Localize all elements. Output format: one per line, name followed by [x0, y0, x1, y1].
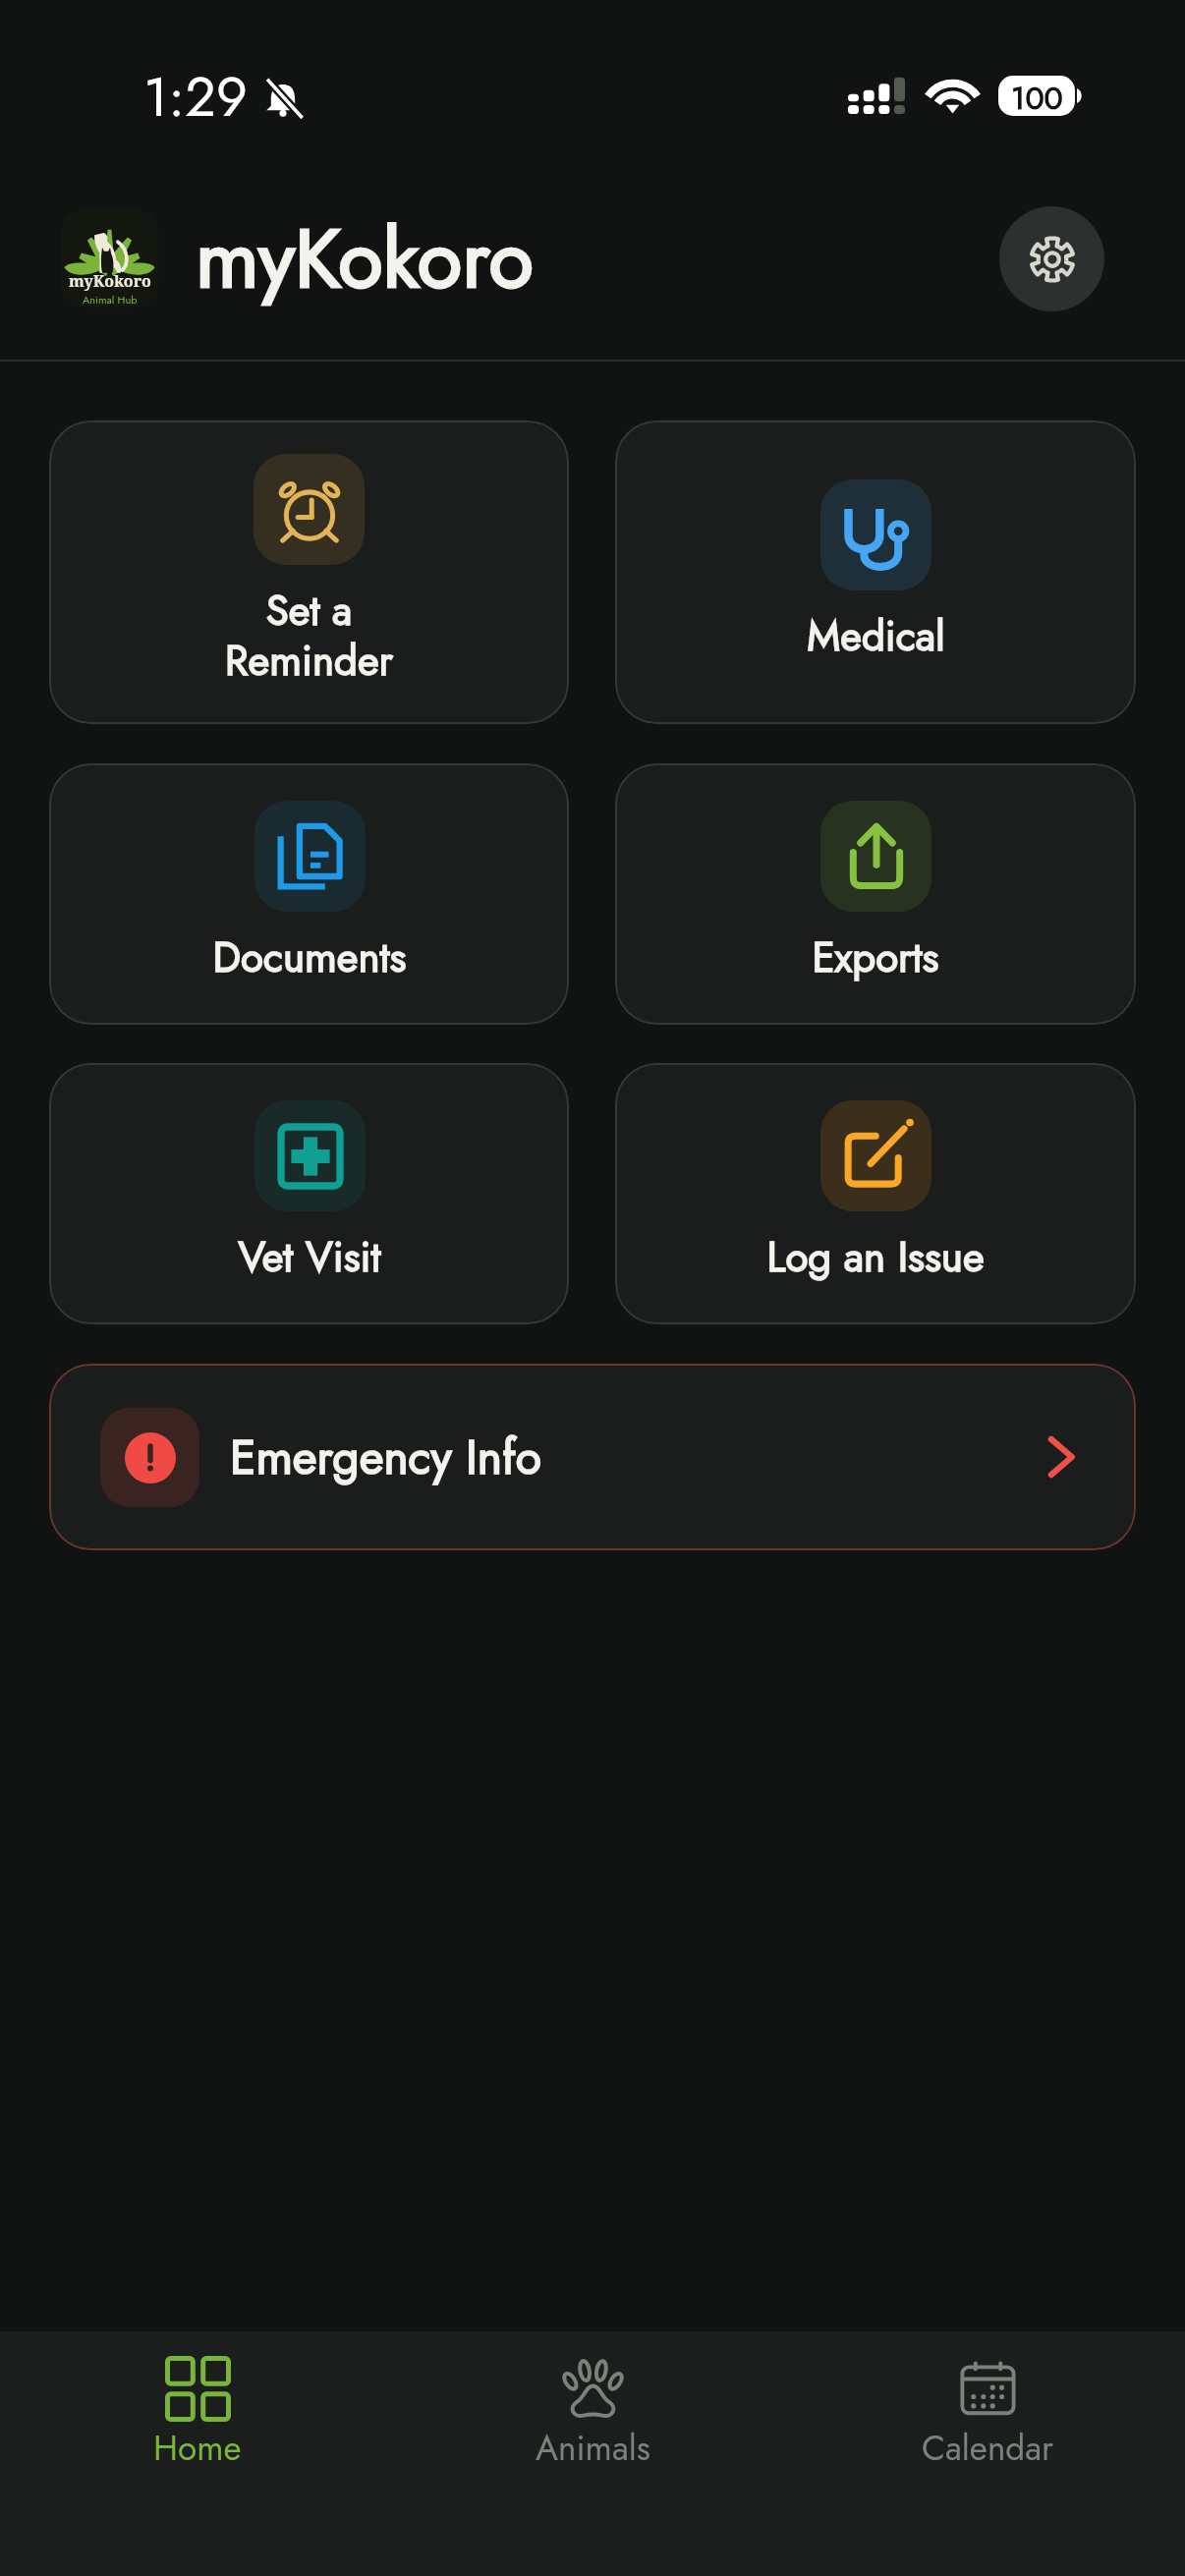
button[interactable]: Log an Issue: [615, 1063, 1136, 1324]
button[interactable]: Set a Reminder: [49, 420, 569, 724]
staticText: 1:29: [143, 57, 249, 137]
staticText: Calendar: [922, 2424, 1054, 2474]
button[interactable]: Settings: [999, 206, 1104, 311]
staticText: myKokoro: [69, 270, 151, 292]
button[interactable]: Medical: [615, 420, 1136, 724]
staticText: Animal Hub: [83, 292, 138, 308]
staticText: Medical: [807, 606, 945, 666]
staticText: Log an Issue: [766, 1227, 985, 1287]
staticText: Set a Reminder: [225, 581, 393, 691]
staticText: Animals: [536, 2424, 650, 2474]
staticText: 100: [1011, 76, 1063, 116]
button[interactable]: Exports: [615, 763, 1136, 1025]
button[interactable]: Calendar: [790, 2331, 1185, 2576]
staticText: Vet Visit: [238, 1227, 381, 1287]
button[interactable]: Animals: [395, 2331, 790, 2576]
staticText: myKokoro: [196, 199, 534, 317]
staticText: Home: [153, 2424, 242, 2474]
button[interactable]: Documents: [49, 763, 569, 1025]
staticText: Emergency Info: [230, 1424, 541, 1491]
staticText: Exports: [812, 927, 939, 987]
staticText: Documents: [212, 927, 407, 987]
button[interactable]: Vet Visit: [49, 1063, 569, 1324]
button[interactable]: Home: [0, 2331, 395, 2576]
button[interactable]: Emergency Info: [49, 1364, 1136, 1550]
